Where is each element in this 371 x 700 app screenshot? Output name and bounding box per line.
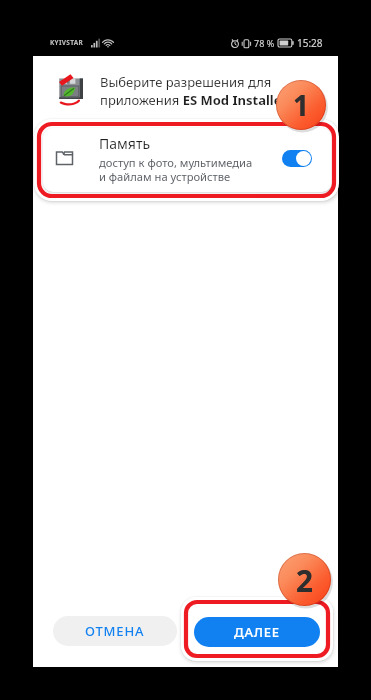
staticText: ДАЛЕЕ xyxy=(234,623,280,641)
staticText: 78 % xyxy=(254,37,275,49)
staticText: Память xyxy=(99,134,151,153)
staticText: 15:28 xyxy=(297,36,323,50)
button[interactable]: Toggle storage permission xyxy=(282,150,312,167)
staticText: Выберите разрешения для приложения ES Mo… xyxy=(100,73,315,109)
button[interactable]: ОТМЕНА xyxy=(53,616,177,646)
staticText: KYIVSTAR xyxy=(50,38,84,47)
button[interactable]: ДАЛЕЕ xyxy=(194,617,320,647)
staticText: ОТМЕНА xyxy=(85,622,145,640)
staticText: доступ к фото, мультимедиа и файлам на у… xyxy=(99,155,253,184)
